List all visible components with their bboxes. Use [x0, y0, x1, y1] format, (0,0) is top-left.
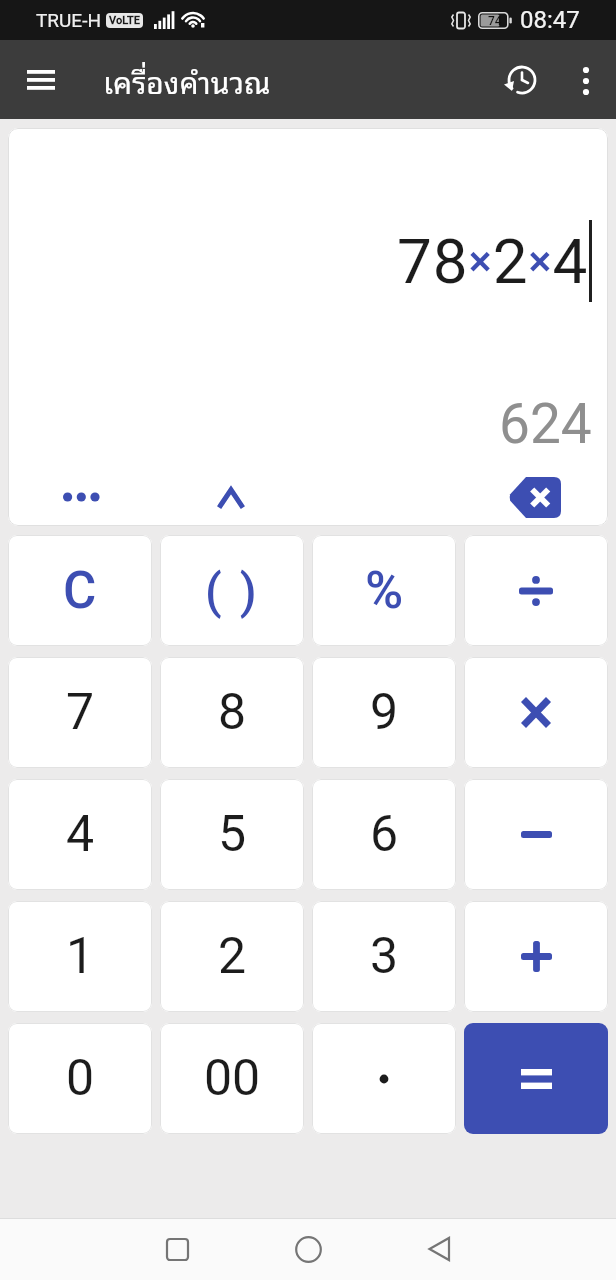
staticText: ( ) [205, 563, 260, 619]
button[interactable]: 5 [160, 779, 304, 890]
staticText: 00 [204, 1049, 261, 1108]
staticText: 3 [370, 927, 399, 986]
staticText: 4 [66, 805, 95, 864]
button[interactable]: 7 [8, 657, 152, 768]
button[interactable]: 0 [8, 1023, 152, 1134]
staticText: VoLTE [109, 14, 140, 27]
staticText: C [63, 561, 97, 621]
staticText: TRUE-H [36, 9, 101, 31]
button[interactable]: 6 [312, 779, 456, 890]
button[interactable]: 1 [8, 901, 152, 1012]
button[interactable] [464, 657, 608, 768]
staticText: 624 [499, 392, 592, 456]
button[interactable]: 9 [312, 657, 456, 768]
button[interactable]: C [8, 535, 152, 646]
button[interactable]: ( ) [160, 535, 304, 646]
staticText: 5 [218, 805, 247, 864]
button[interactable]: 00 [160, 1023, 304, 1134]
button[interactable]: 2 [160, 901, 304, 1012]
button[interactable] [497, 56, 545, 104]
button[interactable] [464, 535, 608, 646]
button[interactable] [412, 1222, 466, 1276]
button[interactable] [464, 901, 608, 1012]
staticText: 2 [218, 927, 247, 986]
button[interactable] [502, 473, 568, 521]
button[interactable] [48, 475, 114, 519]
staticText: 8 [218, 683, 247, 742]
button[interactable]: % [312, 535, 456, 646]
staticText: 7 [66, 683, 95, 742]
staticText: 08:47 [520, 6, 580, 34]
staticText: 6 [370, 805, 399, 864]
button[interactable] [14, 53, 68, 107]
button[interactable]: 4 [8, 779, 152, 890]
staticText: 9 [370, 683, 399, 742]
button[interactable]: 8 [160, 657, 304, 768]
staticText: 74 [488, 14, 502, 28]
staticText: % [365, 560, 404, 621]
staticText: เครื่องคำนวณ [103, 56, 271, 104]
button[interactable]: 3 [312, 901, 456, 1012]
button[interactable] [150, 1222, 204, 1276]
button[interactable] [566, 60, 606, 100]
staticText: 78×2×4 [397, 225, 589, 298]
button[interactable] [281, 1222, 335, 1276]
button[interactable] [464, 779, 608, 890]
button[interactable] [204, 475, 258, 519]
button[interactable] [464, 1023, 608, 1134]
staticText: 1 [66, 927, 95, 986]
button[interactable] [312, 1023, 456, 1134]
staticText: 0 [66, 1049, 95, 1108]
